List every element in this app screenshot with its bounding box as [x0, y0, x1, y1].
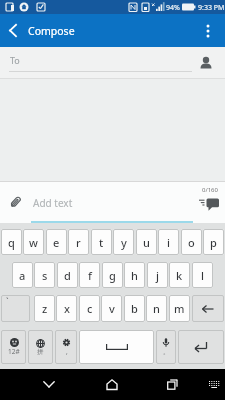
staticText: b [131, 301, 138, 316]
button[interactable]: t [91, 229, 112, 255]
button[interactable]: u [136, 229, 157, 255]
staticText: c [87, 301, 93, 316]
staticText: 0/160 [202, 186, 218, 194]
staticText: l [201, 268, 204, 283]
button[interactable]: o [181, 229, 202, 255]
staticText: f [88, 268, 92, 283]
staticText: s [42, 268, 48, 283]
staticText: v [109, 301, 115, 316]
staticText: a [19, 268, 26, 283]
button[interactable]: l [192, 262, 213, 288]
button[interactable]: m [169, 295, 190, 322]
button[interactable]: To [0, 47, 225, 79]
button[interactable]: s [34, 262, 55, 288]
staticText: e [53, 235, 60, 250]
staticText: o [188, 235, 195, 250]
staticText: t [99, 235, 104, 250]
staticText: Compose [28, 24, 75, 38]
button[interactable] [79, 330, 154, 364]
button[interactable] [193, 182, 225, 223]
button[interactable]: Add text [31, 192, 193, 223]
button[interactable] [178, 330, 224, 364]
button[interactable]: y [113, 229, 134, 255]
button[interactable]: , [55, 330, 77, 364]
button[interactable]: k [169, 262, 190, 288]
staticText: Add text [33, 196, 73, 210]
button[interactable] [9, 195, 22, 208]
button[interactable] [196, 14, 220, 47]
button[interactable]: z [34, 295, 55, 322]
button[interactable]: 。 [156, 330, 176, 364]
button[interactable]: v [101, 295, 122, 322]
button[interactable]: x [56, 295, 77, 322]
button[interactable]: d [57, 262, 78, 288]
staticText: d [64, 268, 71, 283]
staticText: n [153, 301, 160, 316]
staticText: h [131, 268, 138, 283]
button[interactable]: ` [1, 295, 30, 322]
button[interactable]: h [124, 262, 145, 288]
button[interactable]: p [203, 229, 224, 255]
staticText: g [109, 268, 116, 283]
button[interactable] [34, 369, 64, 400]
staticText: i [167, 235, 170, 250]
staticText: r [76, 235, 81, 250]
staticText: To [10, 54, 20, 66]
staticText: x [64, 301, 70, 316]
staticText: m [174, 301, 185, 316]
button[interactable]: i [158, 229, 179, 255]
staticText: 94% [166, 3, 180, 13]
button[interactable]: b [124, 295, 145, 322]
button[interactable] [204, 369, 225, 400]
staticText: p [210, 235, 217, 250]
staticText: 。 [163, 348, 170, 356]
button[interactable]: c [79, 295, 100, 322]
button[interactable]: w [23, 229, 44, 255]
staticText: ` [6, 295, 9, 307]
button[interactable]: n [146, 295, 167, 322]
staticText: y [121, 235, 127, 250]
button[interactable]: 拼 [28, 330, 53, 364]
staticText: w [29, 235, 38, 250]
staticText: 拼 [37, 348, 44, 356]
button[interactable]: r [68, 229, 89, 255]
button[interactable] [0, 14, 26, 47]
staticText: 9:33 PM [198, 3, 225, 13]
staticText: q [8, 235, 15, 250]
staticText: 12# [8, 347, 20, 356]
button[interactable]: f [79, 262, 100, 288]
button[interactable] [97, 369, 127, 400]
button[interactable] [157, 369, 187, 400]
staticText: j [156, 268, 159, 283]
button[interactable]: g [102, 262, 123, 288]
staticText: z [42, 301, 48, 316]
button[interactable]: a [12, 262, 33, 288]
button[interactable]: e [46, 229, 67, 255]
button[interactable]: q [1, 229, 22, 255]
staticText: u [143, 235, 150, 250]
button[interactable] [192, 295, 224, 322]
button[interactable]: 12# [1, 330, 26, 364]
staticText: k [176, 268, 183, 283]
button[interactable]: j [147, 262, 168, 288]
staticText: , [66, 347, 68, 356]
